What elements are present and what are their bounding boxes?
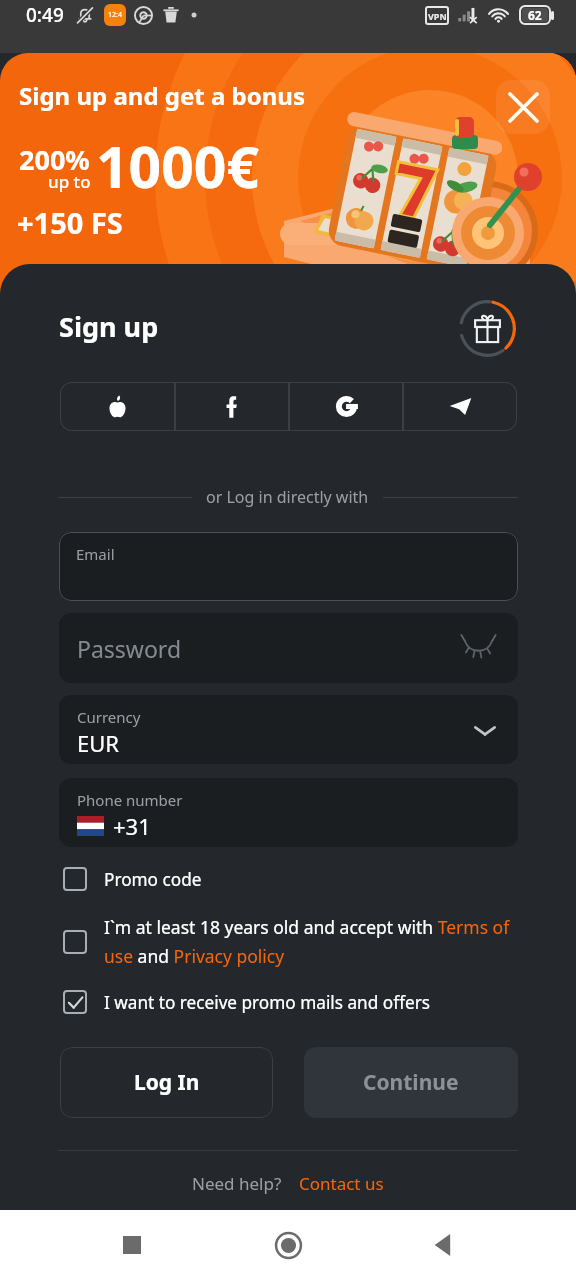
button[interactable]: I want to receive promo mails and offers [63, 990, 431, 1014]
staticText: Promo code [104, 868, 202, 891]
staticText: Currency [77, 707, 141, 727]
staticText: Need help? [192, 1172, 282, 1195]
staticText: or Log in directly with [206, 486, 369, 508]
button[interactable]: Password [59, 613, 518, 683]
button[interactable]: Close [496, 80, 550, 134]
staticText: I want to receive promo mails and offers [104, 991, 431, 1014]
staticText: Contact us [299, 1172, 384, 1195]
button[interactable]: Currency [59, 695, 518, 764]
staticText: Sign up [59, 308, 159, 345]
staticText: up to [48, 170, 91, 193]
staticText: I`m at least 18 years old and accept wit… [104, 915, 536, 968]
staticText: Email [76, 544, 115, 564]
staticText: Password [77, 633, 182, 664]
staticText: Sign up and get a bonus [19, 79, 305, 112]
staticText: VPN [428, 10, 447, 22]
staticText: 0:49 [26, 2, 64, 28]
button[interactable]: Sign in with Facebook [175, 382, 289, 431]
staticText: 1000€ [96, 127, 260, 205]
button[interactable]: Continue [304, 1047, 518, 1118]
button[interactable]: Home [264, 1221, 312, 1269]
staticText: Phone number [77, 790, 183, 810]
button[interactable]: I`m at least 18 years old and accept wit… [63, 915, 536, 968]
button[interactable]: Recents [108, 1221, 156, 1269]
button[interactable]: Phone number [59, 778, 518, 847]
staticText: +150 FS [17, 203, 123, 242]
staticText: EUR [77, 728, 119, 758]
button[interactable]: Log In [60, 1047, 273, 1118]
staticText: Continue [363, 1068, 459, 1097]
button[interactable]: Bonuses [458, 299, 517, 358]
staticText: 200% [19, 141, 90, 178]
button[interactable]: Email [59, 532, 518, 601]
staticText: 12:4 [108, 10, 122, 20]
button[interactable]: Sign in with Google [289, 382, 403, 431]
button[interactable]: Sign in with Telegram [403, 382, 517, 431]
button[interactable]: Sign in with Apple [60, 382, 175, 431]
button[interactable]: Back [420, 1221, 468, 1269]
staticText: 62 [528, 7, 542, 23]
staticText: +31 [113, 811, 151, 841]
staticText: Log In [134, 1068, 200, 1097]
button[interactable]: Contact us [299, 1172, 384, 1195]
button[interactable]: Promo code [63, 867, 202, 891]
